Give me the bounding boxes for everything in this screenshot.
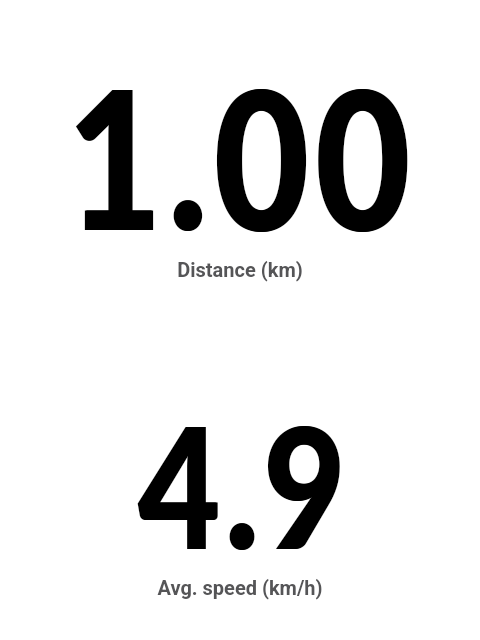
staticText: 1.00 — [66, 40, 416, 270]
staticText: 1.00 — [68, 40, 418, 270]
button[interactable]: Distance (km) — [0, 258, 480, 281]
staticText: 1.00 — [67, 40, 417, 270]
staticText: 4.9 — [139, 383, 351, 585]
staticText: Distance (km) — [177, 258, 303, 281]
staticText: Avg. speed (km/h) — [157, 576, 323, 599]
button[interactable]: 4.9 — [0, 379, 480, 589]
staticText: 4.9 — [137, 383, 349, 585]
staticText: 4.9 — [138, 383, 350, 585]
button[interactable]: 1.00 — [0, 35, 480, 275]
button[interactable]: Avg. speed (km/h) — [0, 576, 480, 599]
